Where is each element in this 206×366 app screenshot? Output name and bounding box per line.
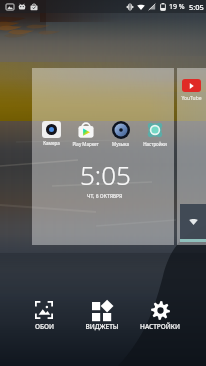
button[interactable]: Настройки (139, 121, 170, 147)
button[interactable]: Play Маркет (70, 121, 101, 147)
button[interactable]: Next home screen (177, 68, 206, 245)
button[interactable]: НАСТРОЙКИ (131, 300, 189, 331)
staticText: 5:05 (189, 2, 204, 12)
staticText: ВИДЖЕТЫ (85, 322, 119, 331)
button[interactable]: Камера (36, 121, 67, 146)
staticText: ЧТ, 6 ОКТЯБРЯ (87, 193, 123, 200)
staticText: 5:05 (80, 157, 131, 192)
staticText: Play Маркет (72, 141, 99, 147)
staticText: YouTube (181, 95, 202, 102)
button[interactable]: ВИДЖЕТЫ (73, 300, 131, 331)
staticText: ОБОИ (35, 322, 54, 331)
button[interactable]: ОБОИ (15, 300, 73, 331)
staticText: Настройки (143, 141, 167, 147)
button[interactable]: Музыка (105, 121, 136, 147)
staticText: 19 % (169, 2, 185, 12)
staticText: Камера (43, 140, 60, 146)
staticText: Музыка (112, 141, 129, 147)
button[interactable]: Камера (32, 68, 174, 245)
staticText: НАСТРОЙКИ (140, 322, 180, 331)
